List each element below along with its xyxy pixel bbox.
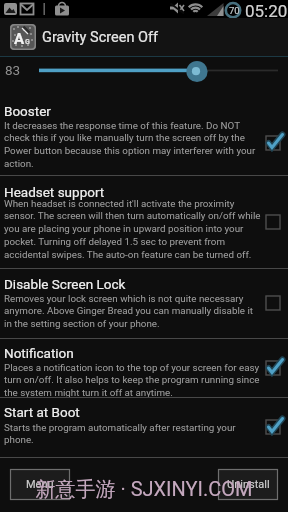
button[interactable]: Uninstall [218, 469, 278, 500]
staticText: pocket. Turning off delayed 1.5 sec to p… [4, 236, 226, 247]
staticText: Start at Boot [4, 404, 80, 420]
button[interactable] [0, 338, 288, 397]
staticText: 83 [5, 62, 21, 78]
staticText: G [25, 38, 30, 46]
staticText: the system might turn it off at anytime. [4, 387, 173, 398]
staticText: Menu [26, 478, 54, 491]
button[interactable] [0, 268, 288, 339]
staticText: you are placing your phone in upward pos… [4, 223, 244, 234]
staticText: in the setting section of your phone. [4, 318, 160, 329]
staticText: Booster [4, 103, 51, 119]
button[interactable] [0, 95, 288, 175]
staticText: 70 [229, 5, 240, 16]
staticText: check this if you like manually turn the… [4, 132, 245, 143]
staticText: 新意手游 · SJXINYI.COM [0, 477, 288, 502]
staticText: A [14, 30, 25, 48]
staticText: accidental swipes. The auto-on feature c… [4, 249, 252, 260]
button[interactable] [0, 175, 288, 268]
staticText: anymore. Above Ginger Bread you can manu… [4, 305, 253, 316]
staticText: Removes your lock screen which is not qu… [4, 293, 244, 304]
staticText: Gravity Screen Off [42, 29, 159, 46]
staticText: When headset is connected it'll activate… [4, 198, 235, 209]
staticText: Starts the program automatically after r… [4, 422, 236, 433]
staticText: turn on/off. It also helps to keep the p… [4, 374, 260, 385]
button[interactable]: 83 [0, 57, 288, 95]
button[interactable]: Menu [10, 469, 70, 500]
staticText: Headset support [4, 184, 105, 200]
button[interactable]: A [10, 24, 36, 50]
staticText: 05:20 [245, 1, 288, 21]
staticText: It decreases the response time of this f… [4, 120, 240, 131]
staticText: Notification [4, 345, 74, 361]
staticText: Uninstall [227, 478, 270, 491]
staticText: Power button because this option may int… [4, 145, 256, 156]
staticText: Disable Screen Lock [4, 276, 126, 292]
staticText: sensor. The screen will then turn automa… [4, 210, 261, 221]
button[interactable] [0, 397, 288, 457]
staticText: action. [4, 158, 34, 169]
staticText: phone. [4, 434, 34, 445]
staticText: Places a notification icon to the top of… [4, 362, 260, 373]
